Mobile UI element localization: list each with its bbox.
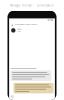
staticText: Message threads · conversation xyxy=(10,4,54,7)
button[interactable]: Alex M. xyxy=(9,27,55,34)
staticText: + xyxy=(11,22,13,27)
staticText: active xyxy=(17,31,21,32)
button[interactable]: + xyxy=(9,22,55,27)
staticText: Start a new message thread today xyxy=(15,23,38,25)
staticText: Alex M. xyxy=(17,28,21,30)
